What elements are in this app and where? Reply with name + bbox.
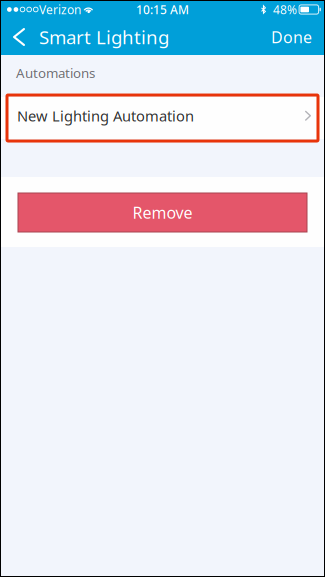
staticText: Smart Lighting: [39, 25, 169, 49]
staticText: 10:15 AM: [136, 1, 189, 17]
staticText: Remove: [132, 202, 192, 223]
button[interactable]: Done: [271, 19, 325, 55]
button[interactable]: New Lighting Automation: [0, 97, 325, 139]
staticText: Verizon: [39, 1, 81, 17]
staticText: Done: [271, 26, 312, 48]
staticText: 48%: [273, 1, 297, 17]
staticText: New Lighting Automation: [17, 106, 194, 125]
button[interactable]: Remove: [18, 193, 307, 232]
button[interactable]: Smart Lighting: [39, 19, 169, 55]
staticText: Automations: [16, 64, 95, 82]
button[interactable]: Back: [0, 19, 39, 55]
